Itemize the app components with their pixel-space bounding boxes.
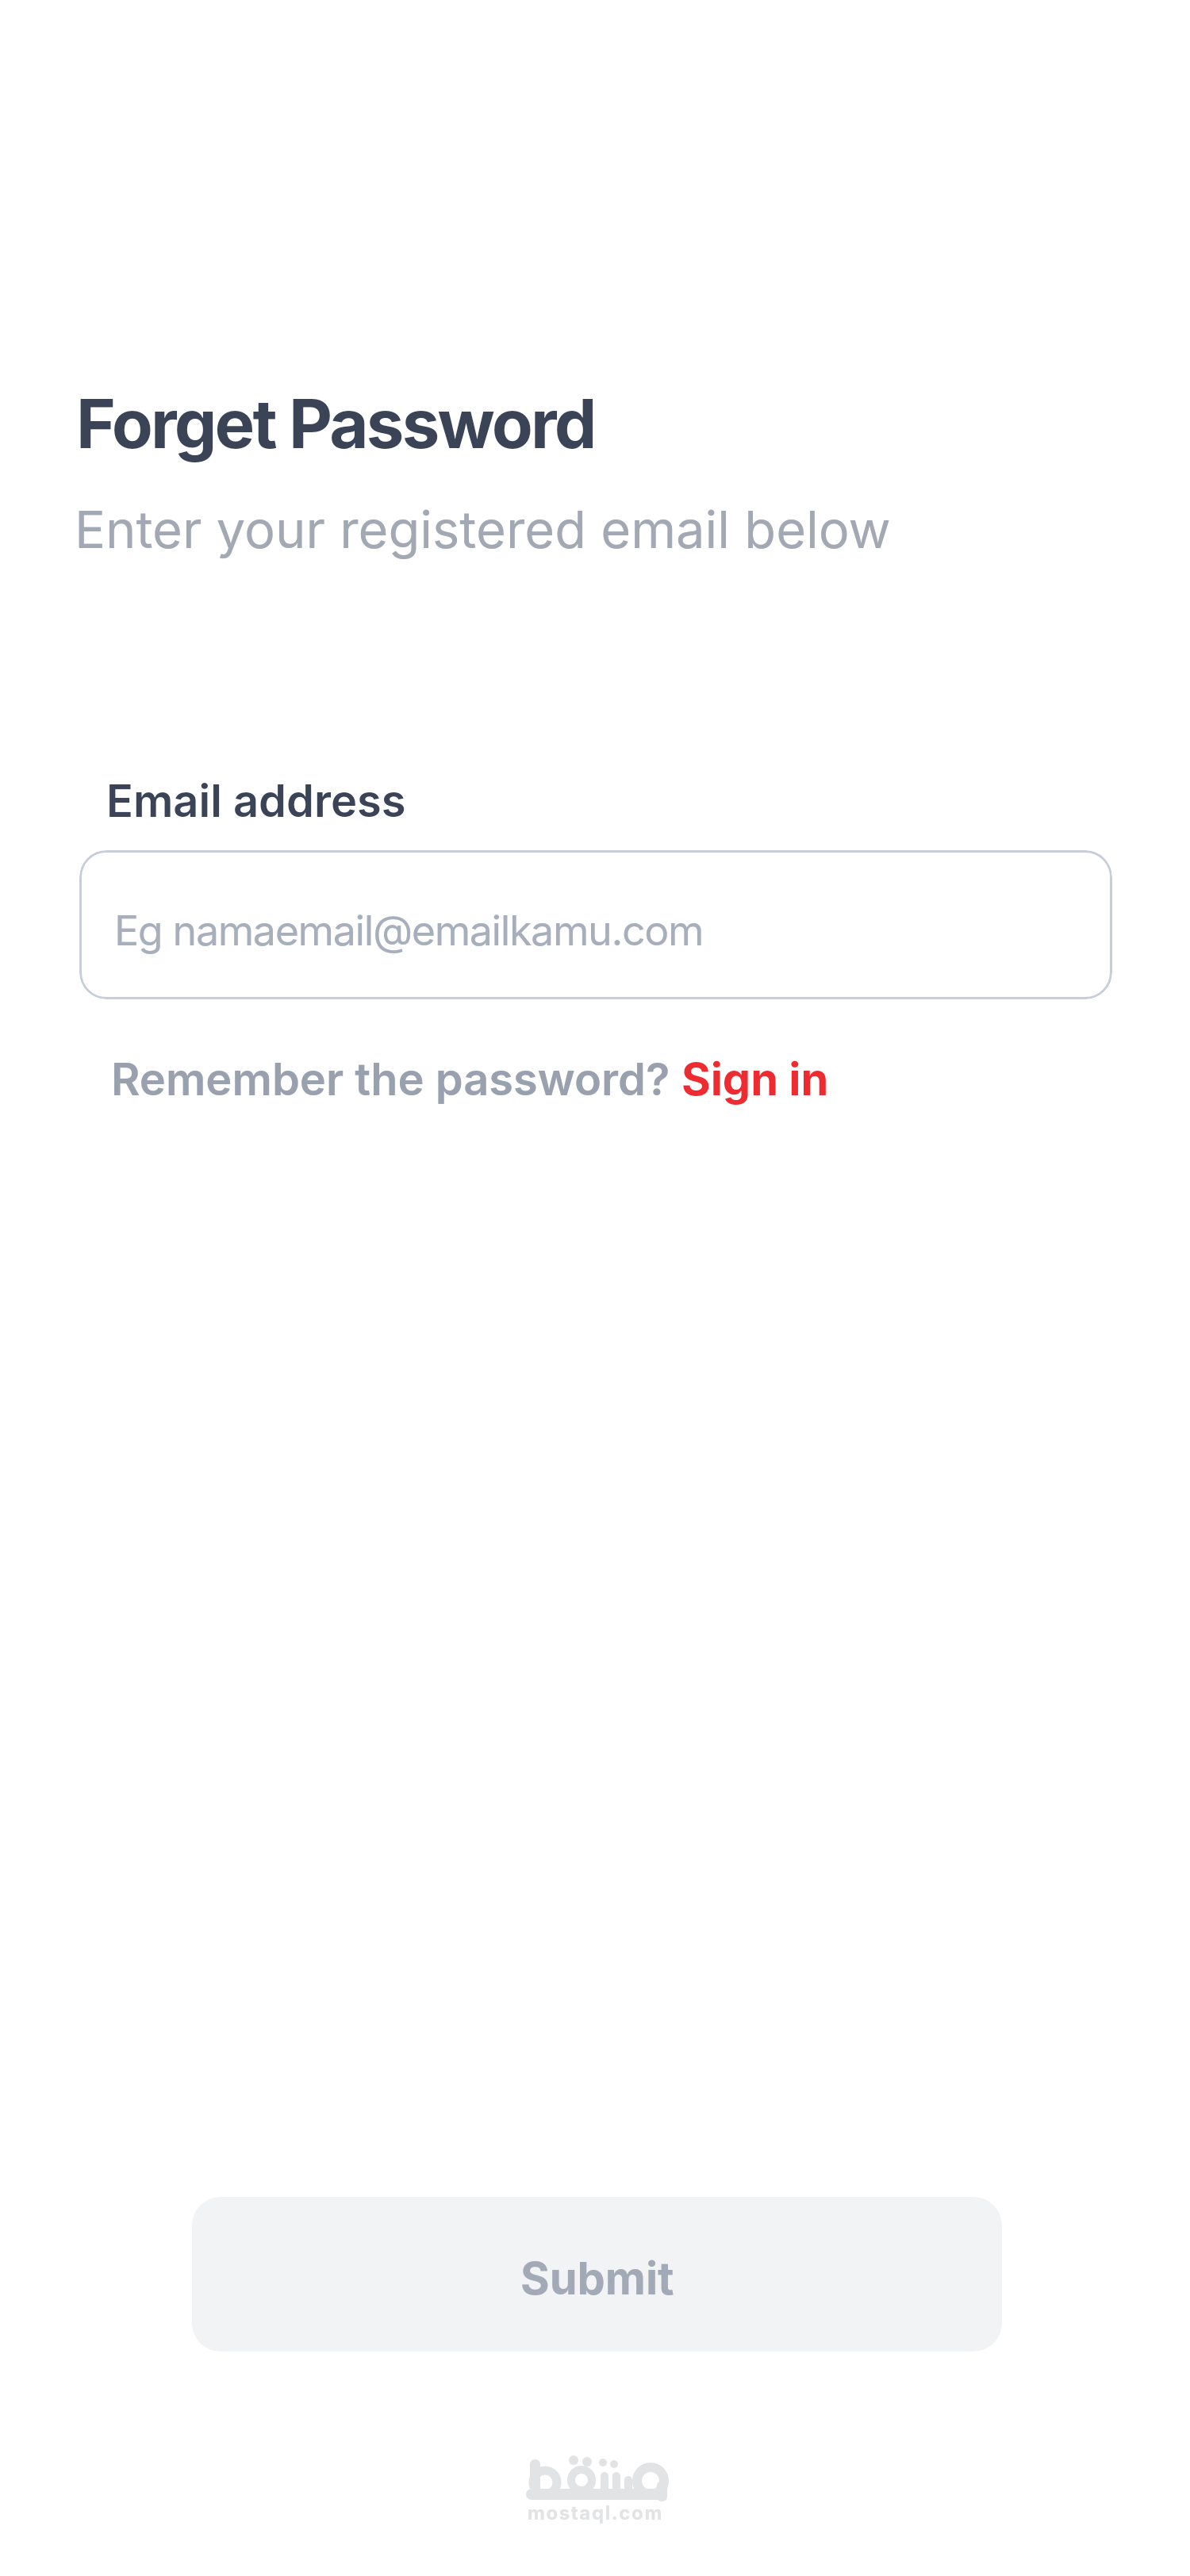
staticText: mostaql.com — [528, 2501, 663, 2524]
staticText: Submit — [520, 2252, 674, 2306]
staticText: Email address — [106, 774, 406, 828]
staticText: Remember the password? — [111, 1052, 681, 1106]
staticText: Enter your registered email below — [75, 498, 891, 561]
staticText: Eg namaemail@emailkamu.com — [114, 906, 704, 956]
button[interactable]: Sign in — [681, 1052, 829, 1106]
button[interactable]: Eg namaemail@emailkamu.com — [79, 850, 1112, 999]
staticText: Forget Password — [76, 383, 595, 465]
button[interactable]: Submit — [192, 2197, 1002, 2352]
